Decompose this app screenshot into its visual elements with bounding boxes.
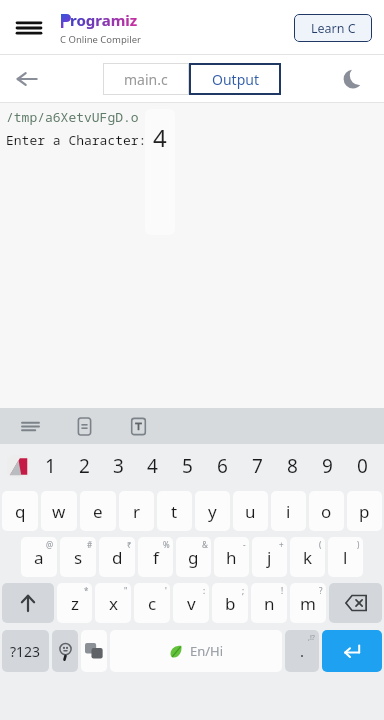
button[interactable]: x: [95, 583, 131, 623]
button[interactable]: Stickers: [3, 451, 33, 481]
staticText: y: [208, 500, 217, 523]
staticText: i: [286, 500, 291, 523]
staticText: o: [321, 500, 332, 523]
staticText: b: [225, 592, 236, 615]
button[interactable]: main.c: [103, 63, 189, 95]
staticText: 9: [322, 453, 333, 479]
button[interactable]: e: [80, 491, 116, 531]
button[interactable]: i: [271, 491, 306, 531]
button[interactable]: n: [251, 583, 287, 623]
button[interactable]: 7: [240, 444, 275, 488]
staticText: 4: [153, 121, 167, 154]
button[interactable]: a: [21, 537, 57, 577]
button[interactable]: Backspace: [329, 583, 382, 623]
button[interactable]: Dark mode: [332, 58, 374, 100]
button[interactable]: Emoji: [52, 630, 78, 672]
button[interactable]: 8: [275, 444, 310, 488]
button[interactable]: ?123: [2, 630, 49, 672]
button[interactable]: Back: [6, 58, 48, 100]
button[interactable]: 1: [33, 444, 67, 488]
button[interactable]: 3: [101, 444, 135, 488]
staticText: p: [359, 500, 370, 523]
button[interactable]: En/Hi: [110, 630, 282, 672]
staticText: (: [319, 539, 322, 550]
staticText: s: [74, 546, 83, 569]
button[interactable]: Settings: [70, 412, 98, 440]
staticText: d: [112, 546, 123, 569]
staticText: v: [187, 592, 196, 615]
button[interactable]: r: [119, 491, 154, 531]
button[interactable]: Translate: [81, 630, 107, 672]
staticText: u: [245, 500, 256, 523]
staticText: .: [300, 641, 305, 661]
button[interactable]: m: [290, 583, 326, 623]
button[interactable]: Menu: [10, 9, 48, 47]
button[interactable]: .: [285, 630, 319, 672]
button[interactable]: Clipboard: [16, 412, 44, 440]
button[interactable]: o: [309, 491, 344, 531]
button[interactable]: h: [214, 537, 249, 577]
button[interactable]: Text editing: [124, 412, 152, 440]
button[interactable]: 9: [310, 444, 345, 488]
staticText: ₹: [127, 539, 132, 550]
staticText: 4: [147, 453, 158, 479]
staticText: x: [109, 592, 118, 615]
button[interactable]: 2: [67, 444, 101, 488]
button[interactable]: 5: [170, 444, 205, 488]
staticText: n: [264, 592, 275, 615]
staticText: 3: [113, 453, 124, 479]
staticText: z: [71, 592, 79, 615]
button[interactable]: p: [347, 491, 382, 531]
button[interactable]: 6: [205, 444, 240, 488]
staticText: 6: [217, 453, 228, 479]
staticText: t: [171, 500, 178, 523]
staticText: g: [188, 546, 199, 569]
button[interactable]: l: [328, 537, 363, 577]
button[interactable]: f: [138, 537, 173, 577]
button[interactable]: b: [212, 583, 248, 623]
button[interactable]: Learn C: [294, 14, 372, 42]
staticText: &: [202, 539, 208, 550]
button[interactable]: 4: [135, 444, 170, 488]
staticText: 1: [45, 453, 56, 479]
button[interactable]: Enter: [322, 630, 382, 672]
staticText: En/Hi: [190, 642, 224, 660]
staticText: ,!?: [308, 633, 315, 643]
button[interactable]: t: [157, 491, 192, 531]
staticText: Learn C: [311, 20, 356, 37]
button[interactable]: 0: [345, 444, 380, 488]
button[interactable]: u: [233, 491, 268, 531]
button[interactable]: z: [57, 583, 92, 623]
button[interactable]: Shift: [2, 583, 54, 623]
staticText: ": [124, 585, 128, 596]
staticText: 2: [79, 453, 90, 479]
staticText: 5: [182, 453, 193, 479]
staticText: rogramiz: [70, 10, 138, 30]
staticText: m: [300, 592, 316, 615]
button[interactable]: w: [41, 491, 77, 531]
staticText: ;: [242, 585, 245, 596]
staticText: a: [34, 546, 44, 569]
staticText: q: [15, 500, 26, 523]
button[interactable]: q: [2, 491, 38, 531]
button[interactable]: v: [173, 583, 209, 623]
button[interactable]: s: [60, 537, 96, 577]
staticText: ?123: [10, 642, 41, 661]
staticText: r: [133, 500, 141, 523]
button[interactable]: Output: [189, 63, 281, 95]
staticText: @: [46, 539, 54, 550]
staticText: -: [243, 539, 246, 550]
staticText: 8: [287, 453, 298, 479]
button[interactable]: j: [252, 537, 287, 577]
staticText: c: [148, 592, 157, 615]
button[interactable]: y: [195, 491, 230, 531]
button[interactable]: k: [290, 537, 325, 577]
button[interactable]: d: [99, 537, 135, 577]
staticText: #: [87, 539, 93, 550]
staticText: ): [357, 539, 360, 550]
staticText: 7: [252, 453, 263, 479]
staticText: ': [165, 585, 167, 596]
staticText: /tmp/a6XetvUFgD.o: [6, 108, 139, 126]
button[interactable]: g: [176, 537, 211, 577]
button[interactable]: c: [134, 583, 170, 623]
